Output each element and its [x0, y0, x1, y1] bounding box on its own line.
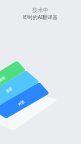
staticText: 文本: [0, 75, 7, 82]
staticText: 对话: [17, 99, 26, 106]
staticText: 技术中: [32, 7, 49, 14]
button[interactable]: 对话: [17, 99, 26, 106]
staticText: 语音: [5, 86, 14, 93]
button[interactable]: 文本: [0, 75, 7, 82]
staticText: 即时的AI翻译器: [23, 14, 58, 21]
button[interactable]: 语音: [5, 86, 14, 93]
